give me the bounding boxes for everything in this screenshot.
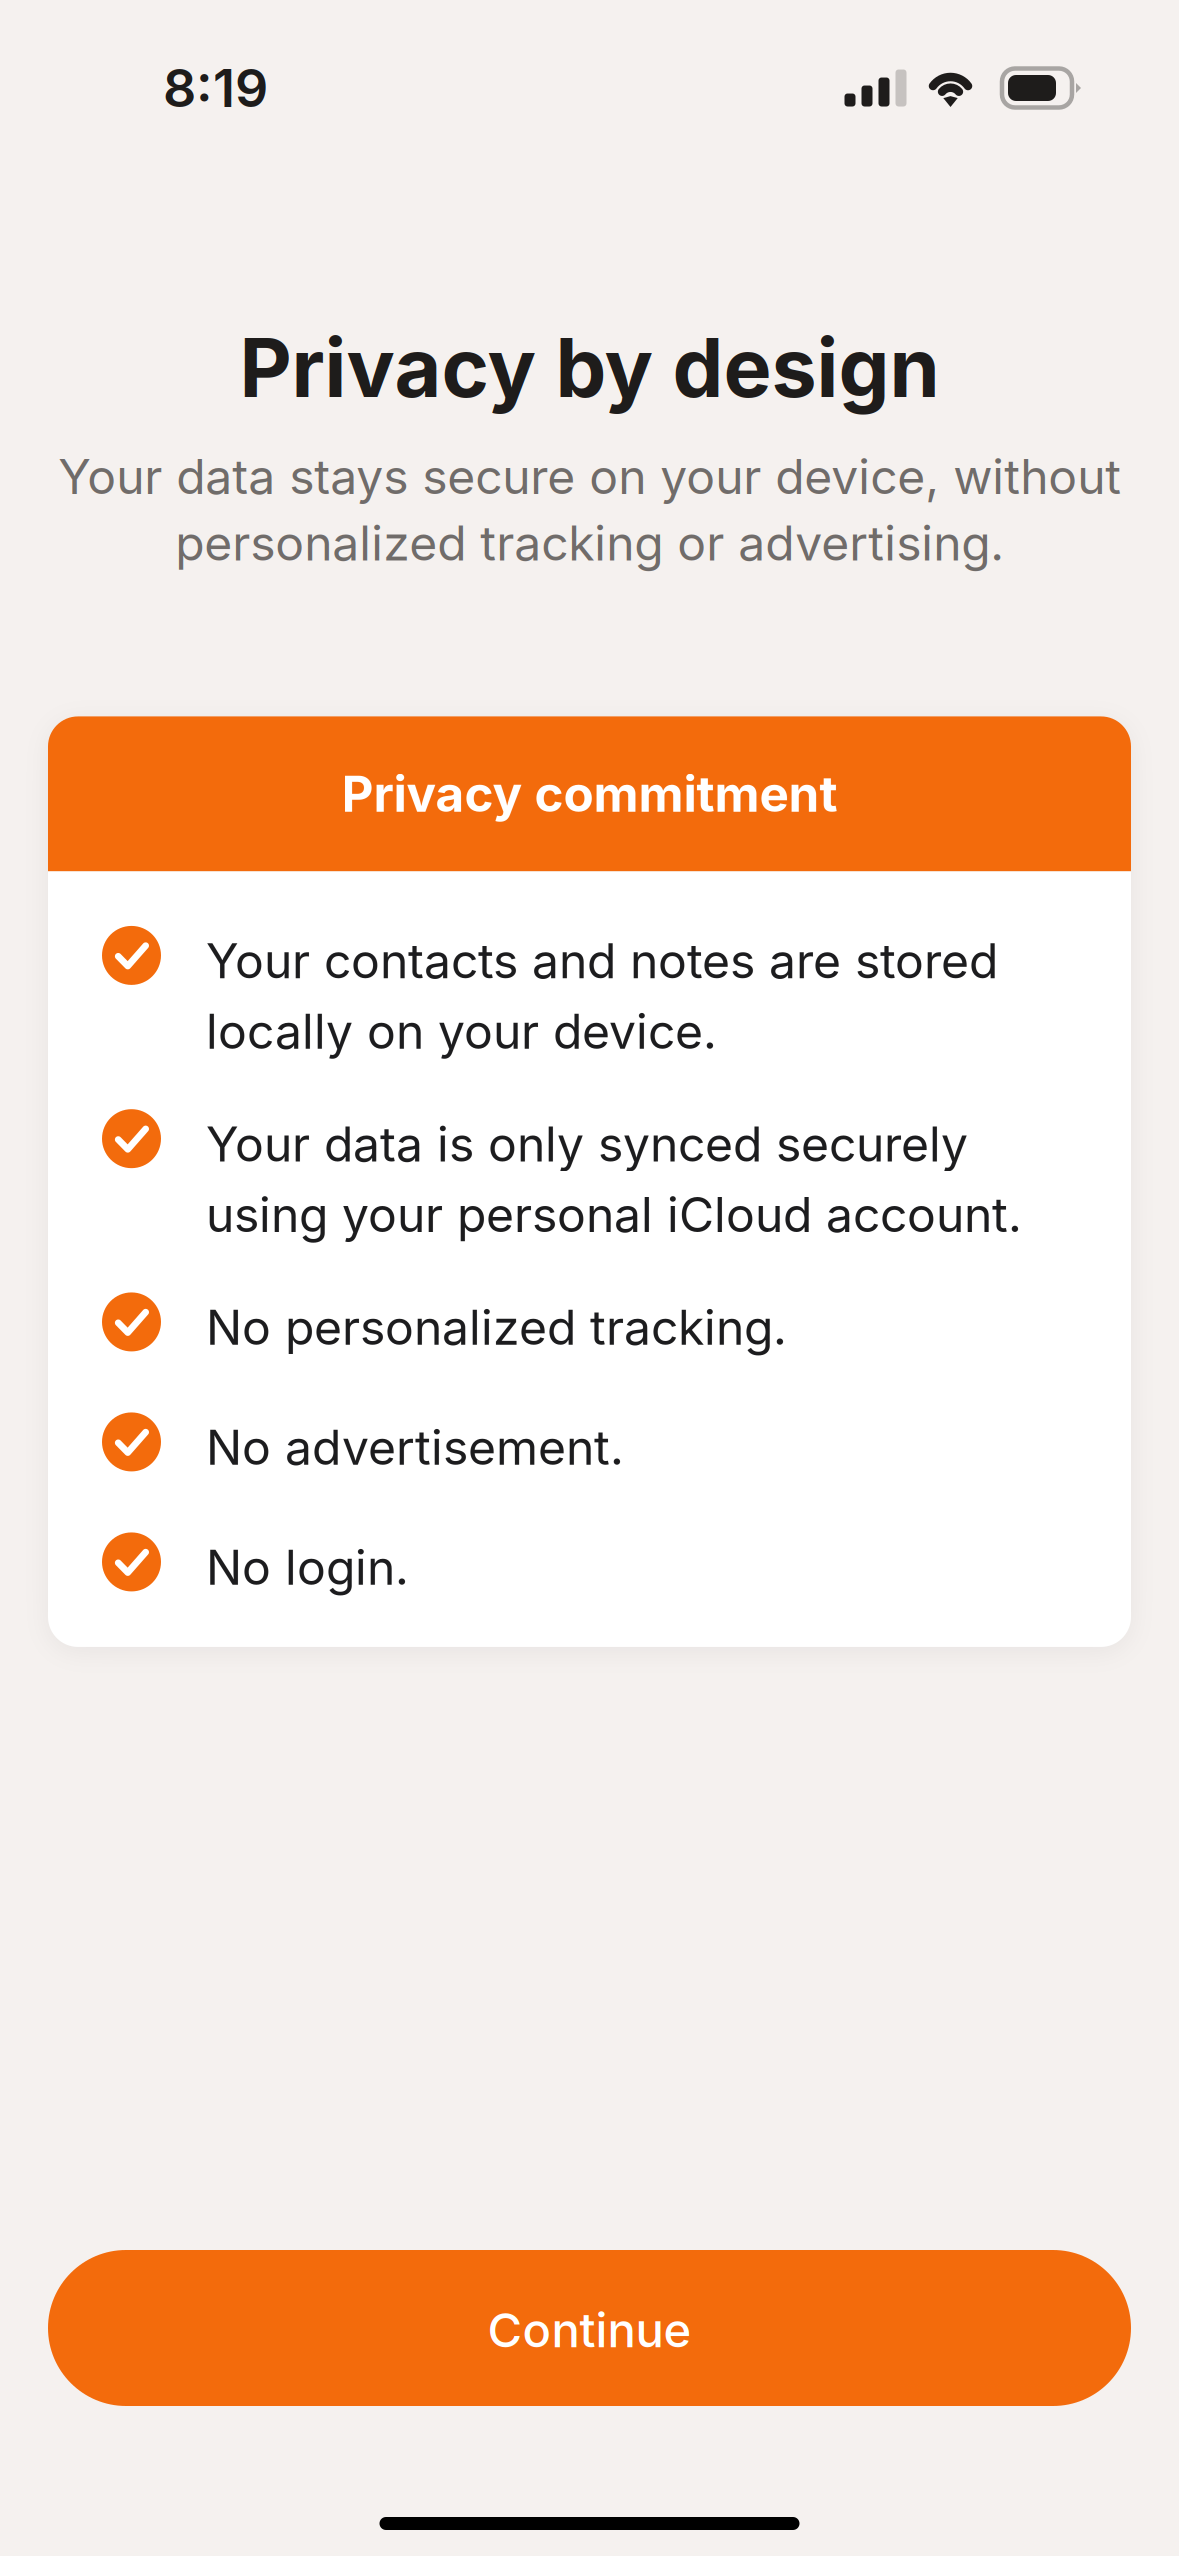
button[interactable]: Continue <box>48 2250 1131 2406</box>
staticText: No personalized tracking. <box>206 1299 787 1355</box>
staticText: Your data is only synced securely using … <box>206 1116 1022 1243</box>
staticText: Privacy by design <box>239 320 939 415</box>
staticText: Your contacts and notes are stored local… <box>206 932 998 1060</box>
staticText: Continue <box>487 2302 691 2358</box>
staticText: No advertisement. <box>206 1419 624 1475</box>
staticText: Your data stays secure on your device, w… <box>58 448 1121 571</box>
staticText: No login. <box>206 1539 409 1595</box>
staticText: Privacy commitment <box>341 765 837 823</box>
staticText: 8:19 <box>163 57 268 119</box>
